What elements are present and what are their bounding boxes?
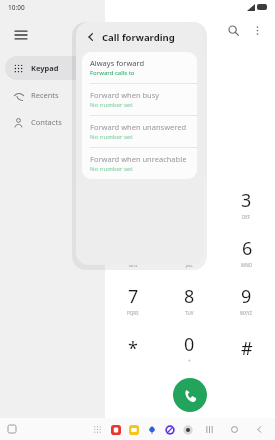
staticText: 9 [241,284,252,309]
button[interactable]: Recents [5,83,100,107]
staticText: No number set [90,133,133,141]
staticText: Keypad [31,63,59,73]
button[interactable]: Always forward [82,52,197,83]
button[interactable]: 6 [218,228,275,276]
staticText: Contacts [31,117,62,127]
button[interactable]: 4 [105,228,161,276]
button[interactable]: All apps [91,423,104,436]
staticText: Forward when unanswered [90,122,187,132]
staticText: 3 [241,188,252,213]
button[interactable]: Call [173,378,207,412]
staticText: Always forward [90,58,145,68]
button[interactable]: Back [82,28,100,46]
staticText: Forward when unreachable [90,154,187,164]
button[interactable]: Chrome-like app [109,423,122,436]
staticText: Call forwarding [102,31,175,44]
staticText: Forward calls to [90,69,135,77]
button[interactable]: 2 [161,180,218,228]
button[interactable]: 9 [218,276,275,324]
button[interactable]: Grey app [181,423,194,436]
staticText: No number set [90,101,133,109]
staticText: GHI [129,262,138,268]
button[interactable]: Search [221,18,245,42]
staticText: TUV [185,310,194,316]
staticText: Recents [31,90,59,100]
button[interactable]: 3 [218,180,275,228]
button[interactable]: * [105,324,161,372]
button[interactable]: 8 [161,276,218,324]
button[interactable]: 5 [161,228,218,276]
button[interactable]: Recent apps [202,422,217,437]
button[interactable]: More options [245,18,269,42]
button[interactable]: Purple app [163,423,176,436]
button[interactable]: Blue app [145,423,158,436]
staticText: Forward when busy [90,90,160,100]
button[interactable]: Open navigation menu [6,20,36,50]
staticText: PQRS [127,310,139,316]
button[interactable]: Back [252,422,267,437]
staticText: + [188,358,191,364]
staticText: 6 [242,236,253,261]
staticText: 0 [184,332,195,357]
button[interactable]: Keypad [5,56,100,80]
staticText: 8 [184,284,195,309]
button[interactable]: Forward when busy [82,83,197,115]
staticText: # [241,336,253,361]
button[interactable]: Recent app [6,423,18,435]
staticText: 10:00 [8,3,25,12]
button[interactable]: 0 [161,324,218,372]
button[interactable]: Yellow app [127,423,140,436]
staticText: JKL [186,262,193,268]
button[interactable]: 7 [105,276,161,324]
button[interactable]: Contacts [5,110,100,134]
button[interactable]: Forward when unreachable [82,147,197,179]
staticText: WXYZ [240,310,253,316]
button[interactable]: Forward when unanswered [82,115,197,147]
staticText: No number set [90,165,133,173]
staticText: MNO [241,262,253,268]
staticText: 7 [128,284,139,309]
button[interactable]: # [218,324,275,372]
button[interactable]: Home [227,422,242,437]
staticText: * [128,336,138,361]
staticText: DEF [242,214,251,220]
